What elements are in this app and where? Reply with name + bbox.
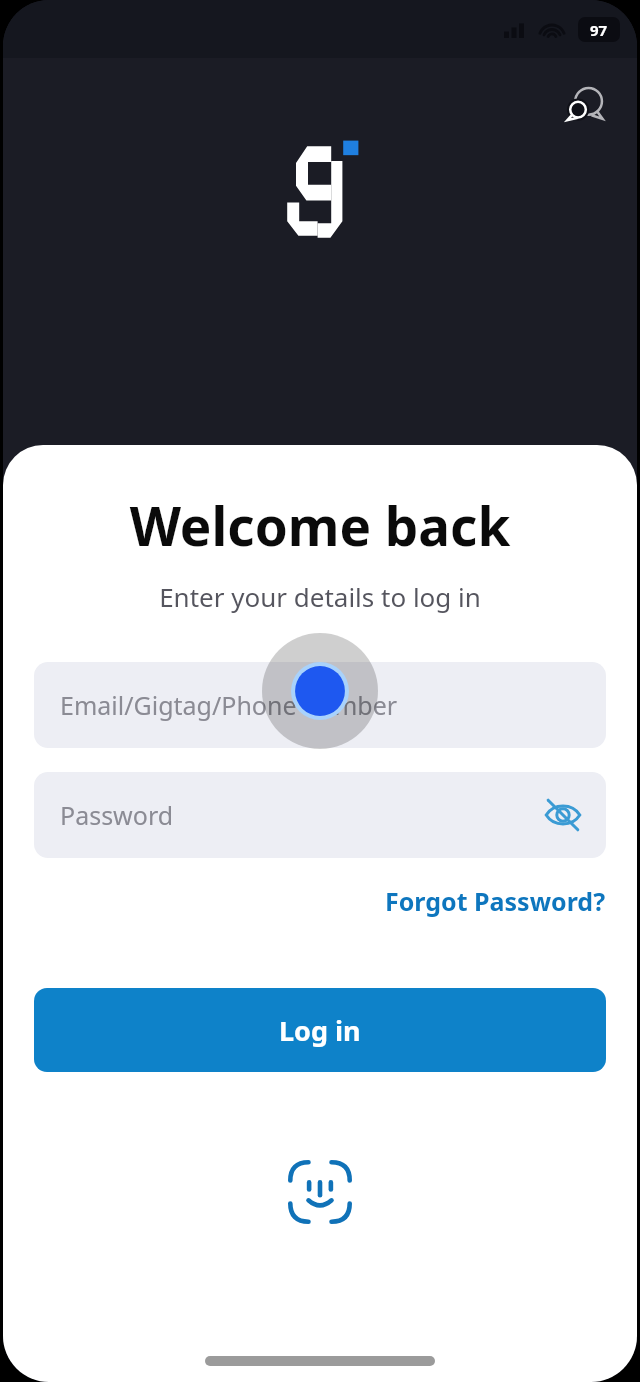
staticText: Forgot Password? <box>385 884 606 918</box>
button[interactable]: Show password <box>538 790 588 840</box>
button[interactable]: Email/Gigtag/Phone number <box>34 662 606 748</box>
button[interactable]: Forgot Password? <box>381 880 610 922</box>
staticText: Email/Gigtag/Phone number <box>60 688 398 722</box>
staticText: 97 <box>590 20 608 40</box>
button[interactable]: Support chat <box>555 76 613 134</box>
button[interactable]: Log in <box>34 988 606 1072</box>
staticText: Enter your details to log in <box>3 579 637 614</box>
staticText: Welcome back <box>3 489 637 561</box>
staticText: Log in <box>279 1012 361 1049</box>
staticText: Password <box>60 798 174 832</box>
button[interactable]: Password <box>34 772 606 858</box>
button[interactable]: Log in with Face ID <box>282 1154 358 1230</box>
